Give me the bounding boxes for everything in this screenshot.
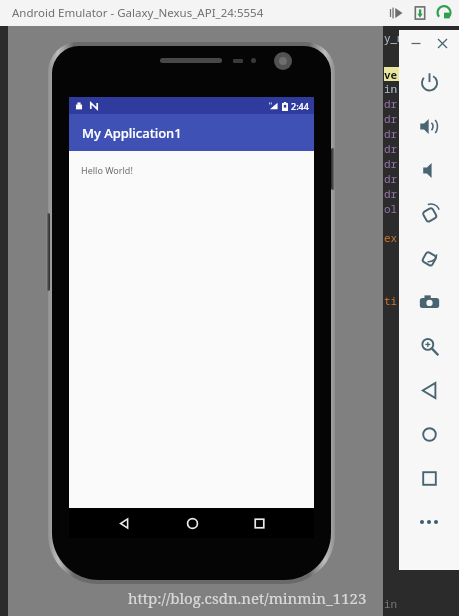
button[interactable]: Recents bbox=[407, 456, 451, 500]
button[interactable]: Rerun bbox=[435, 4, 453, 22]
button[interactable]: Home bbox=[179, 510, 205, 536]
staticText: dr bbox=[384, 141, 398, 156]
staticText: My Application1 bbox=[82, 124, 182, 142]
staticText: Hello World! bbox=[81, 164, 133, 176]
staticText: in bbox=[384, 81, 398, 96]
staticText: 2:44 bbox=[291, 100, 309, 112]
staticText: dr bbox=[384, 156, 398, 171]
staticText: in bbox=[384, 596, 398, 611]
button[interactable]: Screenshot bbox=[407, 280, 451, 324]
staticText: ol bbox=[384, 201, 398, 216]
button[interactable]: Close bbox=[432, 33, 452, 53]
button[interactable]: Home bbox=[407, 412, 451, 456]
button[interactable]: More bbox=[407, 500, 451, 544]
staticText: ve bbox=[384, 67, 398, 81]
staticText: ex bbox=[384, 230, 398, 245]
staticText: dr bbox=[384, 171, 398, 186]
button[interactable]: Zoom bbox=[407, 324, 451, 368]
button[interactable]: My Application1 bbox=[69, 114, 314, 151]
button[interactable]: Install APK bbox=[411, 4, 429, 22]
button[interactable]: Back bbox=[111, 510, 137, 536]
button[interactable]: Recents bbox=[246, 510, 272, 536]
staticText: ti bbox=[384, 293, 398, 308]
button[interactable]: Back bbox=[407, 368, 451, 412]
staticText: y_m bbox=[384, 30, 404, 45]
button[interactable]: Volume up bbox=[407, 104, 451, 148]
button[interactable]: Minimize bbox=[406, 33, 426, 53]
button[interactable]: Rotate left bbox=[407, 192, 451, 236]
button[interactable]: Power bbox=[407, 60, 451, 104]
staticText: dr bbox=[384, 126, 398, 141]
staticText: dr bbox=[384, 96, 398, 111]
staticText: http://blog.csdn.net/minmin_1123 bbox=[128, 588, 367, 608]
staticText: dr bbox=[384, 111, 398, 126]
button[interactable]: Volume down bbox=[407, 148, 451, 192]
button[interactable]: Run bbox=[387, 4, 405, 22]
staticText: Android Emulator - Galaxy_Nexus_API_24:5… bbox=[12, 5, 264, 21]
button[interactable]: Rotate right bbox=[407, 236, 451, 280]
staticText: dr bbox=[384, 186, 398, 201]
